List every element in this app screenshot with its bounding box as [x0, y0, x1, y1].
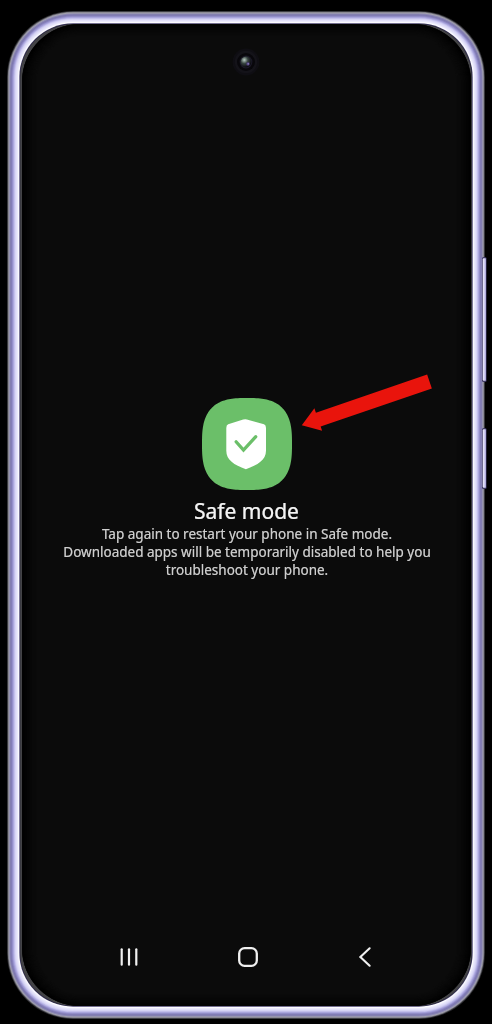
button[interactable]: Back	[341, 933, 389, 981]
staticText: Safe mode	[194, 497, 299, 526]
staticText: Tap again to restart your phone in Safe …	[63, 525, 431, 579]
button[interactable]: Recents	[105, 933, 153, 981]
button[interactable]: Home	[224, 933, 272, 981]
button[interactable]: Safe mode	[202, 398, 292, 490]
